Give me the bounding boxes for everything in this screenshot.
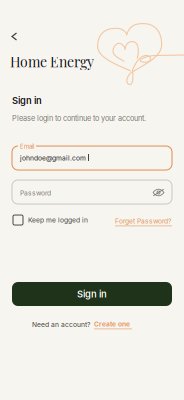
- staticText: Please login to continue to your account…: [12, 114, 146, 123]
- staticText: Need an account?: [32, 321, 90, 329]
- button[interactable]: Sign in: [12, 282, 172, 306]
- staticText: Home Energy: [10, 52, 94, 71]
- button[interactable]: Show password: [148, 184, 169, 201]
- staticText: Sign in: [12, 95, 42, 106]
- staticText: Create one: [94, 320, 130, 328]
- staticText: johndoe@gmail.com: [20, 154, 86, 162]
- button[interactable]: Back: [4, 25, 24, 48]
- staticText: Password: [20, 189, 51, 197]
- staticText: Sign in: [77, 288, 107, 300]
- staticText: Keep me logged in: [28, 216, 88, 224]
- button[interactable]: Create one: [94, 320, 132, 329]
- staticText: Email: [20, 143, 34, 150]
- button[interactable]: Forget Password?: [115, 217, 172, 226]
- button[interactable]: Keep me logged in: [13, 215, 88, 225]
- staticText: Forget Password?: [115, 217, 171, 225]
